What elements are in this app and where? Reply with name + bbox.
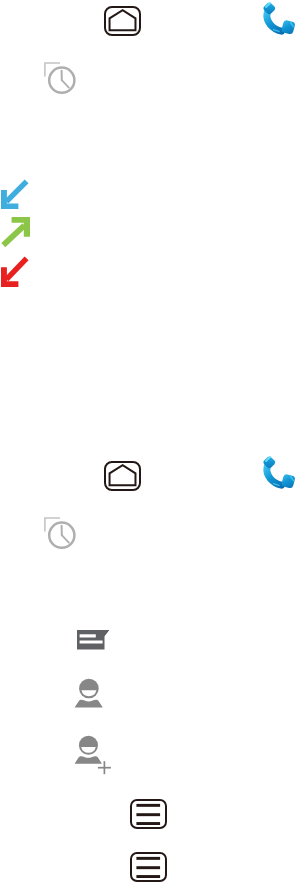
button[interactable]: Call <box>261 1 297 41</box>
button[interactable]: Incoming call <box>1 180 28 209</box>
button[interactable]: Menu <box>130 852 167 882</box>
button[interactable]: Outgoing call <box>1 217 30 247</box>
button[interactable]: Missed call <box>1 257 28 287</box>
button[interactable]: Home <box>104 461 141 491</box>
button[interactable]: Messages <box>77 630 110 650</box>
button[interactable]: Menu <box>130 799 167 829</box>
button[interactable]: Contacts <box>74 678 104 709</box>
button[interactable]: Recent calls <box>44 517 78 551</box>
button[interactable]: Add contact <box>74 735 116 777</box>
button[interactable]: Call <box>261 455 297 495</box>
button[interactable]: Recent calls <box>44 62 78 96</box>
button[interactable]: Home <box>104 6 141 36</box>
